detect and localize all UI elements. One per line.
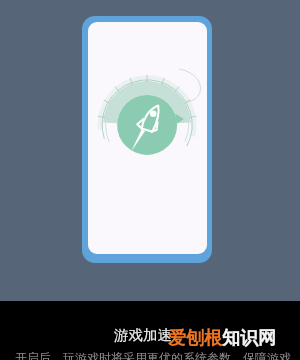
staticText: 知识网 — [222, 327, 276, 350]
staticText: 开启后，玩游戏时将采用更优的系统参数，保障游戏 — [15, 350, 291, 360]
staticText: 爱刨根 — [168, 327, 222, 350]
staticText: 游戏加速 — [114, 326, 172, 344]
